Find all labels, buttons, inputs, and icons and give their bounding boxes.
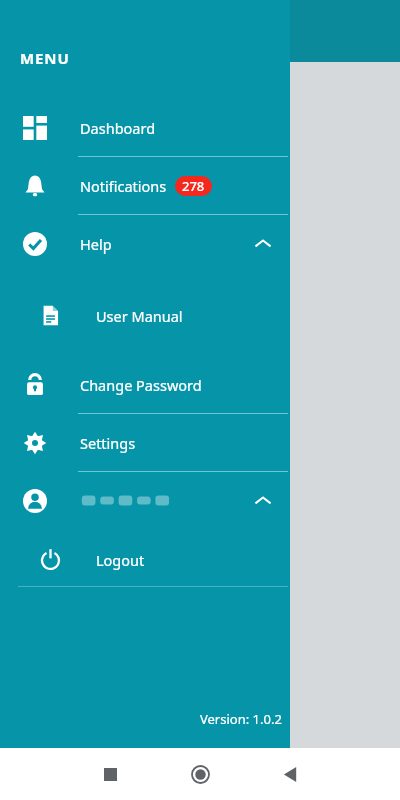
- button[interactable]: User Manual: [0, 295, 290, 336]
- staticText: Settings: [80, 433, 136, 453]
- button[interactable]: Collapse: [0, 480, 290, 521]
- staticText: Notifications: [80, 176, 167, 196]
- button[interactable]: Back: [245, 748, 335, 800]
- staticText: Help: [80, 234, 112, 254]
- button[interactable]: Logout: [0, 539, 290, 580]
- staticText: Version: 1.0.2: [200, 710, 282, 728]
- button[interactable]: Notifications: [0, 165, 290, 206]
- button[interactable]: Dashboard: [0, 107, 290, 148]
- staticText: User Manual: [96, 306, 183, 326]
- staticText: Change Password: [80, 375, 202, 395]
- staticText: Logout: [96, 550, 145, 570]
- button[interactable]: Change Password: [0, 364, 290, 405]
- button[interactable]: Settings: [0, 422, 290, 463]
- staticText: 278: [182, 177, 205, 195]
- button[interactable]: Recent apps: [65, 748, 155, 800]
- staticText: MENU: [20, 48, 70, 68]
- other: Collapse: [254, 235, 272, 253]
- staticText: Dashboard: [80, 118, 156, 138]
- other: Collapse: [254, 492, 272, 510]
- button[interactable]: Home: [155, 748, 245, 800]
- button[interactable]: Help: [0, 223, 290, 264]
